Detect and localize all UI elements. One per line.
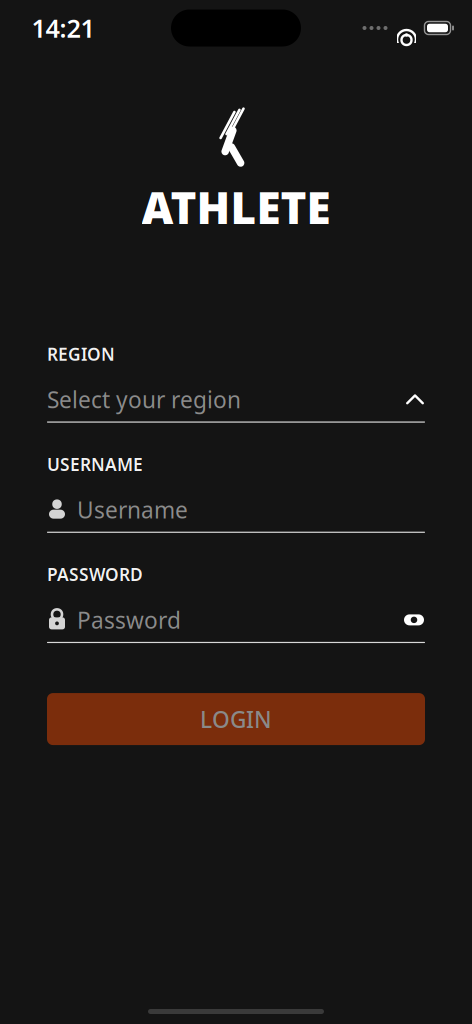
staticText: Select your region bbox=[47, 384, 241, 414]
staticText: Username bbox=[77, 495, 188, 525]
staticText: ATHLETE bbox=[141, 178, 330, 236]
staticText: USERNAME bbox=[47, 453, 143, 476]
button[interactable]: Username bbox=[47, 496, 425, 533]
staticText: LOGIN bbox=[200, 704, 272, 734]
staticText: Password bbox=[77, 605, 181, 635]
staticText: PASSWORD bbox=[47, 563, 143, 586]
staticText: REGION bbox=[47, 342, 115, 365]
button[interactable]: Password bbox=[47, 606, 425, 643]
staticText: 14:21 bbox=[31, 11, 94, 45]
button[interactable]: LOGIN bbox=[47, 693, 425, 745]
button[interactable]: Select your region bbox=[47, 385, 425, 423]
